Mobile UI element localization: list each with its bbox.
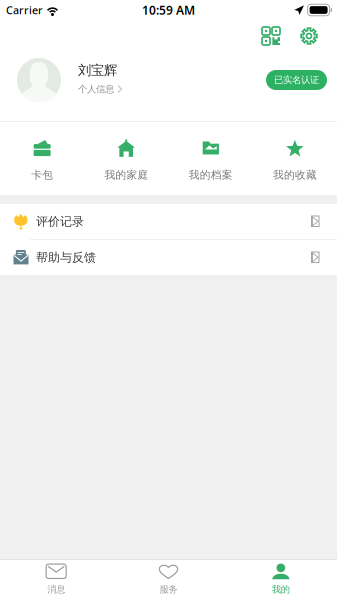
button[interactable]: 帮助与反馈 [0, 240, 337, 275]
staticText: 10:59 AM [142, 2, 195, 18]
button[interactable]: Scan QR code [260, 25, 282, 47]
staticText: 个人信息 [78, 83, 114, 95]
button[interactable]: 我的 [225, 560, 337, 600]
button[interactable]: 我的收藏 [253, 122, 337, 193]
button[interactable]: 评价记录 [0, 204, 337, 239]
staticText: Carrier [6, 3, 43, 17]
staticText: 已实名认证 [274, 74, 319, 86]
staticText: 我的档案 [189, 168, 233, 181]
staticText: 服务 [159, 584, 177, 595]
button[interactable]: 消息 [0, 560, 112, 600]
button[interactable]: 服务 [112, 560, 225, 600]
staticText: 我的 [272, 584, 290, 595]
button[interactable]: 个人信息 [78, 78, 123, 95]
button[interactable]: 我的档案 [168, 122, 253, 193]
staticText: 卡包 [31, 168, 53, 181]
staticText: 评价记录 [36, 214, 84, 229]
staticText: 帮助与反馈 [36, 250, 96, 265]
staticText: 刘宝辉 [78, 62, 117, 78]
staticText: 我的收藏 [273, 168, 317, 181]
button[interactable]: 我的家庭 [84, 122, 168, 193]
staticText: 消息 [47, 584, 65, 595]
button[interactable]: 卡包 [0, 122, 84, 193]
staticText: 我的家庭 [104, 168, 148, 181]
button[interactable]: 已实名认证 [266, 70, 327, 90]
button[interactable]: Settings [298, 25, 320, 47]
